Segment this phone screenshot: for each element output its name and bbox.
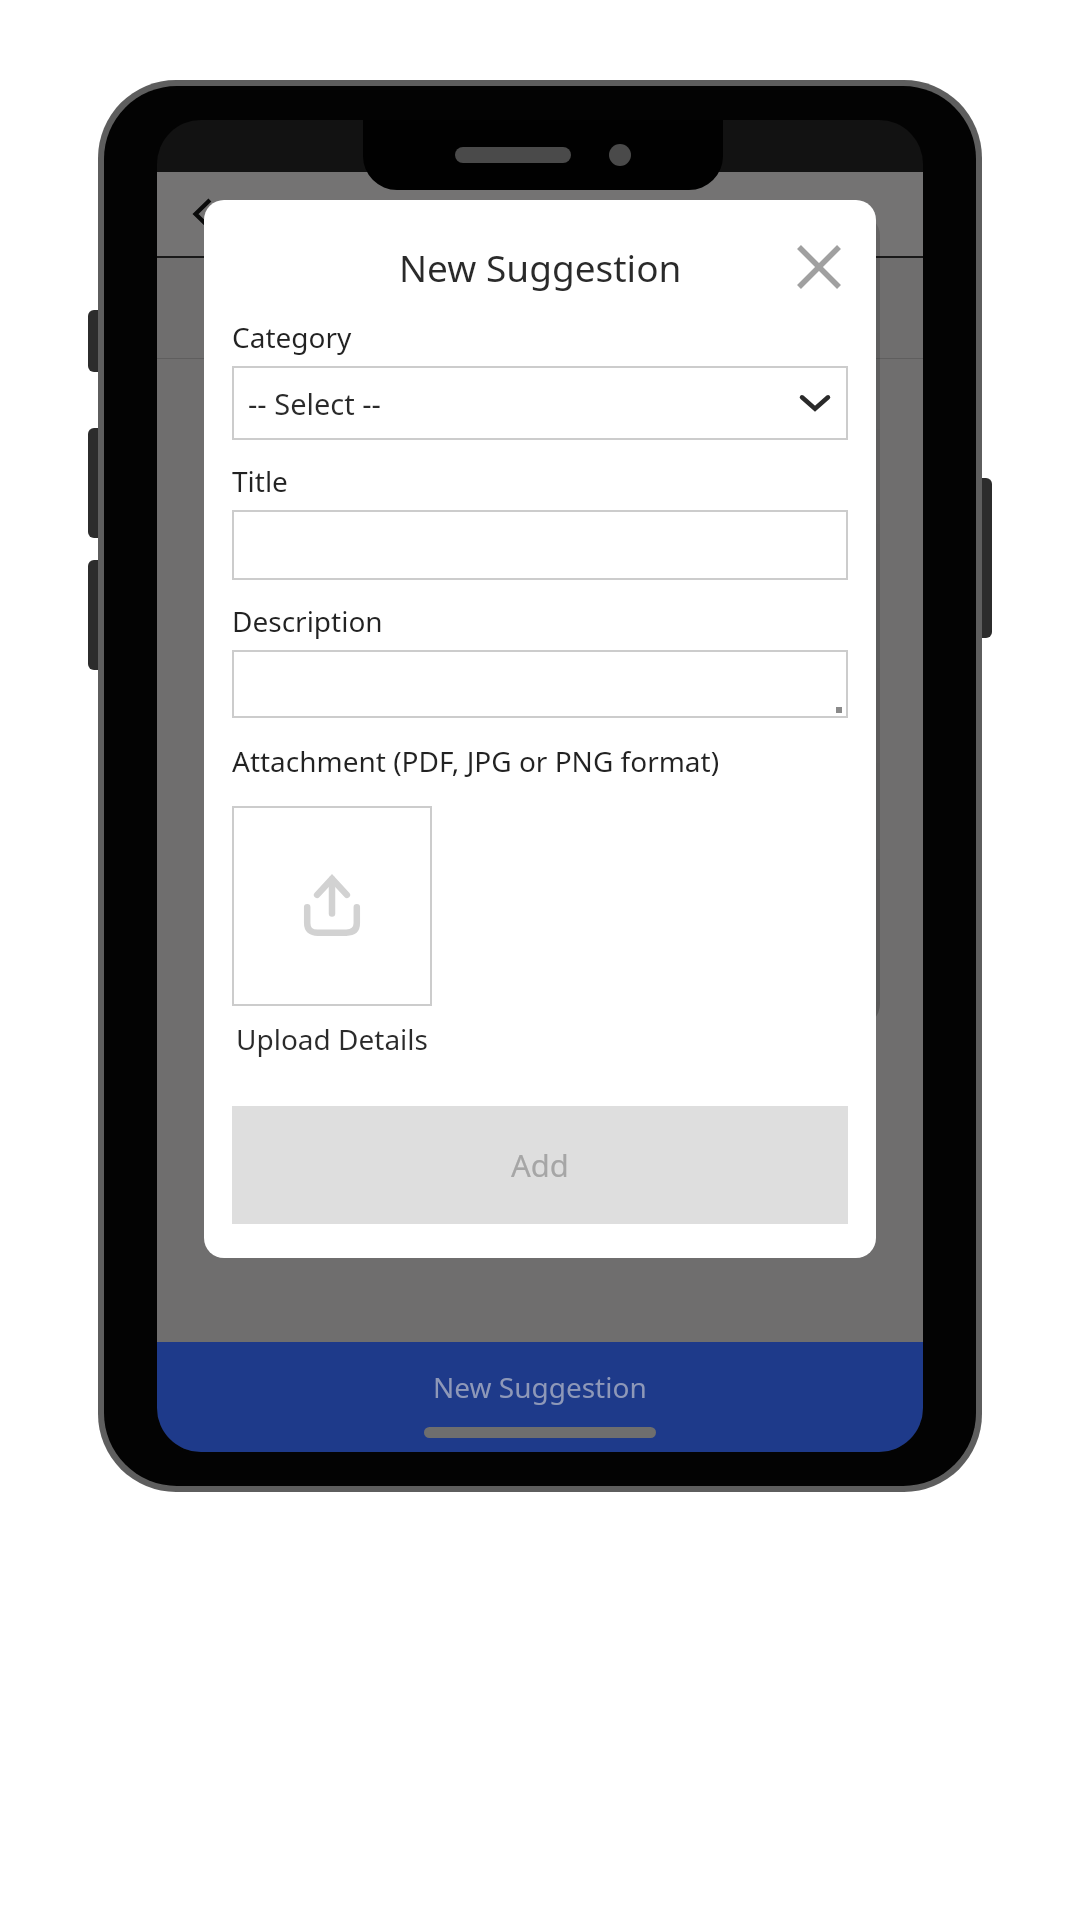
button[interactable] xyxy=(157,258,923,358)
button[interactable]: -- Select -- xyxy=(232,366,848,440)
staticText: Category xyxy=(232,318,352,356)
staticText: Suggestions xyxy=(446,193,635,235)
button[interactable]: Upload Details xyxy=(232,806,432,1006)
staticText: Title xyxy=(232,462,288,500)
button[interactable]: Suggestions xyxy=(157,172,923,256)
button[interactable] xyxy=(232,510,848,580)
staticText: Upload Details xyxy=(236,1020,428,1058)
staticText: Attachment (PDF, JPG or PNG format) xyxy=(232,742,720,780)
button[interactable]: Add xyxy=(232,1106,848,1224)
staticText: New Suggestion xyxy=(433,1368,647,1406)
staticText: Add xyxy=(511,1144,569,1186)
button[interactable]: New Suggestion xyxy=(157,1342,923,1452)
staticText: -- Select -- xyxy=(248,384,381,423)
button[interactable]: Back xyxy=(175,186,231,242)
button[interactable] xyxy=(232,650,848,718)
button[interactable]: Close xyxy=(790,238,848,296)
staticText: New Suggestion xyxy=(399,242,682,292)
staticText: Description xyxy=(232,602,383,640)
